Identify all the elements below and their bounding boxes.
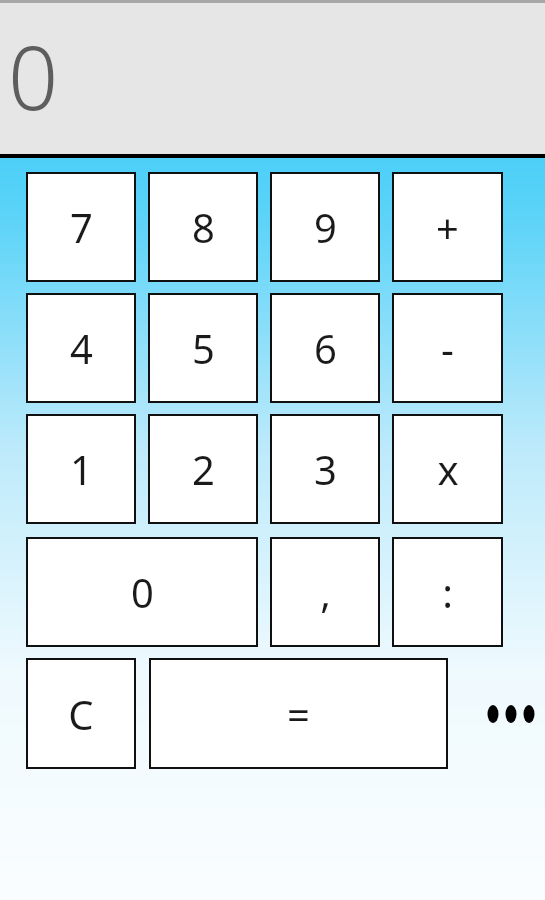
staticText: : — [442, 565, 453, 619]
button[interactable]: 6 — [270, 293, 380, 403]
button[interactable]: x — [392, 414, 503, 524]
staticText: 8 — [192, 200, 215, 254]
staticText: x — [437, 442, 459, 496]
staticText: 4 — [70, 321, 93, 375]
button[interactable]: 5 — [148, 293, 258, 403]
button[interactable]: : — [392, 537, 503, 647]
staticText: 5 — [192, 321, 215, 375]
button[interactable]: + — [392, 172, 503, 282]
button[interactable]: - — [392, 293, 503, 403]
button[interactable]: 0 — [26, 537, 258, 647]
staticText: C — [68, 687, 94, 741]
staticText: , — [320, 565, 331, 619]
staticText: 2 — [192, 442, 215, 496]
button[interactable]: 8 — [148, 172, 258, 282]
button[interactable]: 3 — [270, 414, 380, 524]
button[interactable]: , — [270, 537, 380, 647]
staticText: 6 — [314, 321, 337, 375]
button[interactable]: More options — [485, 690, 537, 738]
staticText: 0 — [8, 16, 59, 136]
button[interactable]: 7 — [26, 172, 136, 282]
staticText: 1 — [70, 442, 93, 496]
button[interactable]: 9 — [270, 172, 380, 282]
staticText: 0 — [131, 565, 154, 619]
staticText: 7 — [70, 200, 93, 254]
staticText: 3 — [314, 442, 337, 496]
button[interactable]: 4 — [26, 293, 136, 403]
staticText: = — [287, 687, 310, 741]
staticText: + — [436, 200, 459, 254]
button[interactable]: 1 — [26, 414, 136, 524]
button[interactable]: = — [149, 658, 448, 769]
button[interactable]: 2 — [148, 414, 258, 524]
button[interactable]: C — [26, 658, 136, 769]
staticText: - — [441, 321, 454, 375]
staticText: 9 — [314, 200, 337, 254]
